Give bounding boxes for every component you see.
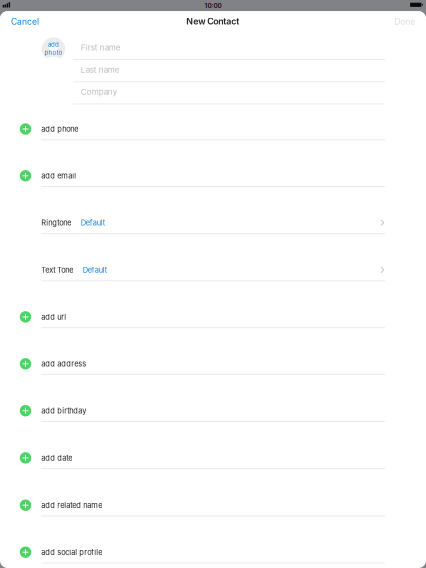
staticText: add address xyxy=(41,359,86,368)
button[interactable]: add email xyxy=(0,139,426,186)
staticText: Last name xyxy=(81,65,120,75)
staticText: add date xyxy=(41,453,72,462)
staticText: First name xyxy=(81,43,121,52)
staticText: Text Tone xyxy=(41,265,73,274)
button[interactable]: Last name xyxy=(0,59,426,81)
button[interactable]: First name xyxy=(0,37,426,59)
button[interactable]: add birthday xyxy=(0,374,426,421)
button[interactable]: Text Tone xyxy=(0,233,426,280)
button[interactable]: add date xyxy=(0,421,426,468)
button[interactable]: Company xyxy=(0,81,426,103)
button[interactable]: Cancel xyxy=(0,11,52,33)
button[interactable]: Done xyxy=(394,17,415,27)
button[interactable]: add url xyxy=(0,280,426,327)
staticText: 10:00 xyxy=(204,2,221,10)
staticText: Company xyxy=(81,87,117,97)
staticText: New Contact xyxy=(186,16,239,27)
button[interactable]: add related name xyxy=(0,469,426,516)
button[interactable]: add social profile xyxy=(0,516,426,563)
staticText: Default xyxy=(83,265,107,274)
staticText: Ringtone xyxy=(41,218,71,227)
staticText: add social profile xyxy=(41,548,102,557)
button[interactable]: add phone xyxy=(0,103,426,139)
staticText: Default xyxy=(81,218,105,227)
staticText: add url xyxy=(41,312,66,321)
staticText: Done xyxy=(394,16,415,27)
button[interactable]: Add photo xyxy=(42,37,65,61)
staticText: add birthday xyxy=(41,406,86,415)
staticText: photo xyxy=(44,49,62,56)
button[interactable]: add address xyxy=(0,327,426,374)
staticText: add email xyxy=(41,171,76,180)
button[interactable]: Ringtone xyxy=(0,186,426,233)
staticText: add xyxy=(48,41,59,48)
staticText: add phone xyxy=(41,124,78,133)
staticText: Cancel xyxy=(11,17,39,27)
staticText: add related name xyxy=(41,501,102,510)
